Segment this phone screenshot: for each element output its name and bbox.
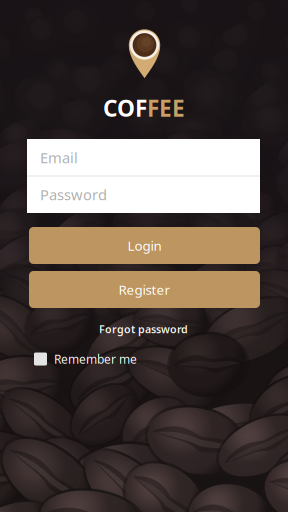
staticText: Register (118, 281, 170, 298)
button[interactable]: Remember me (34, 351, 267, 367)
staticText: Forgot password (99, 322, 188, 336)
button[interactable]: Login (29, 227, 260, 264)
staticText: FEE (147, 93, 185, 123)
staticText: Password (40, 185, 107, 204)
staticText: Email (40, 148, 78, 167)
staticText: Remember me (54, 351, 137, 367)
button[interactable]: Register (29, 271, 260, 308)
button[interactable]: Forgot password (27, 321, 260, 337)
staticText: Login (127, 237, 161, 254)
staticText: COF (103, 93, 147, 123)
